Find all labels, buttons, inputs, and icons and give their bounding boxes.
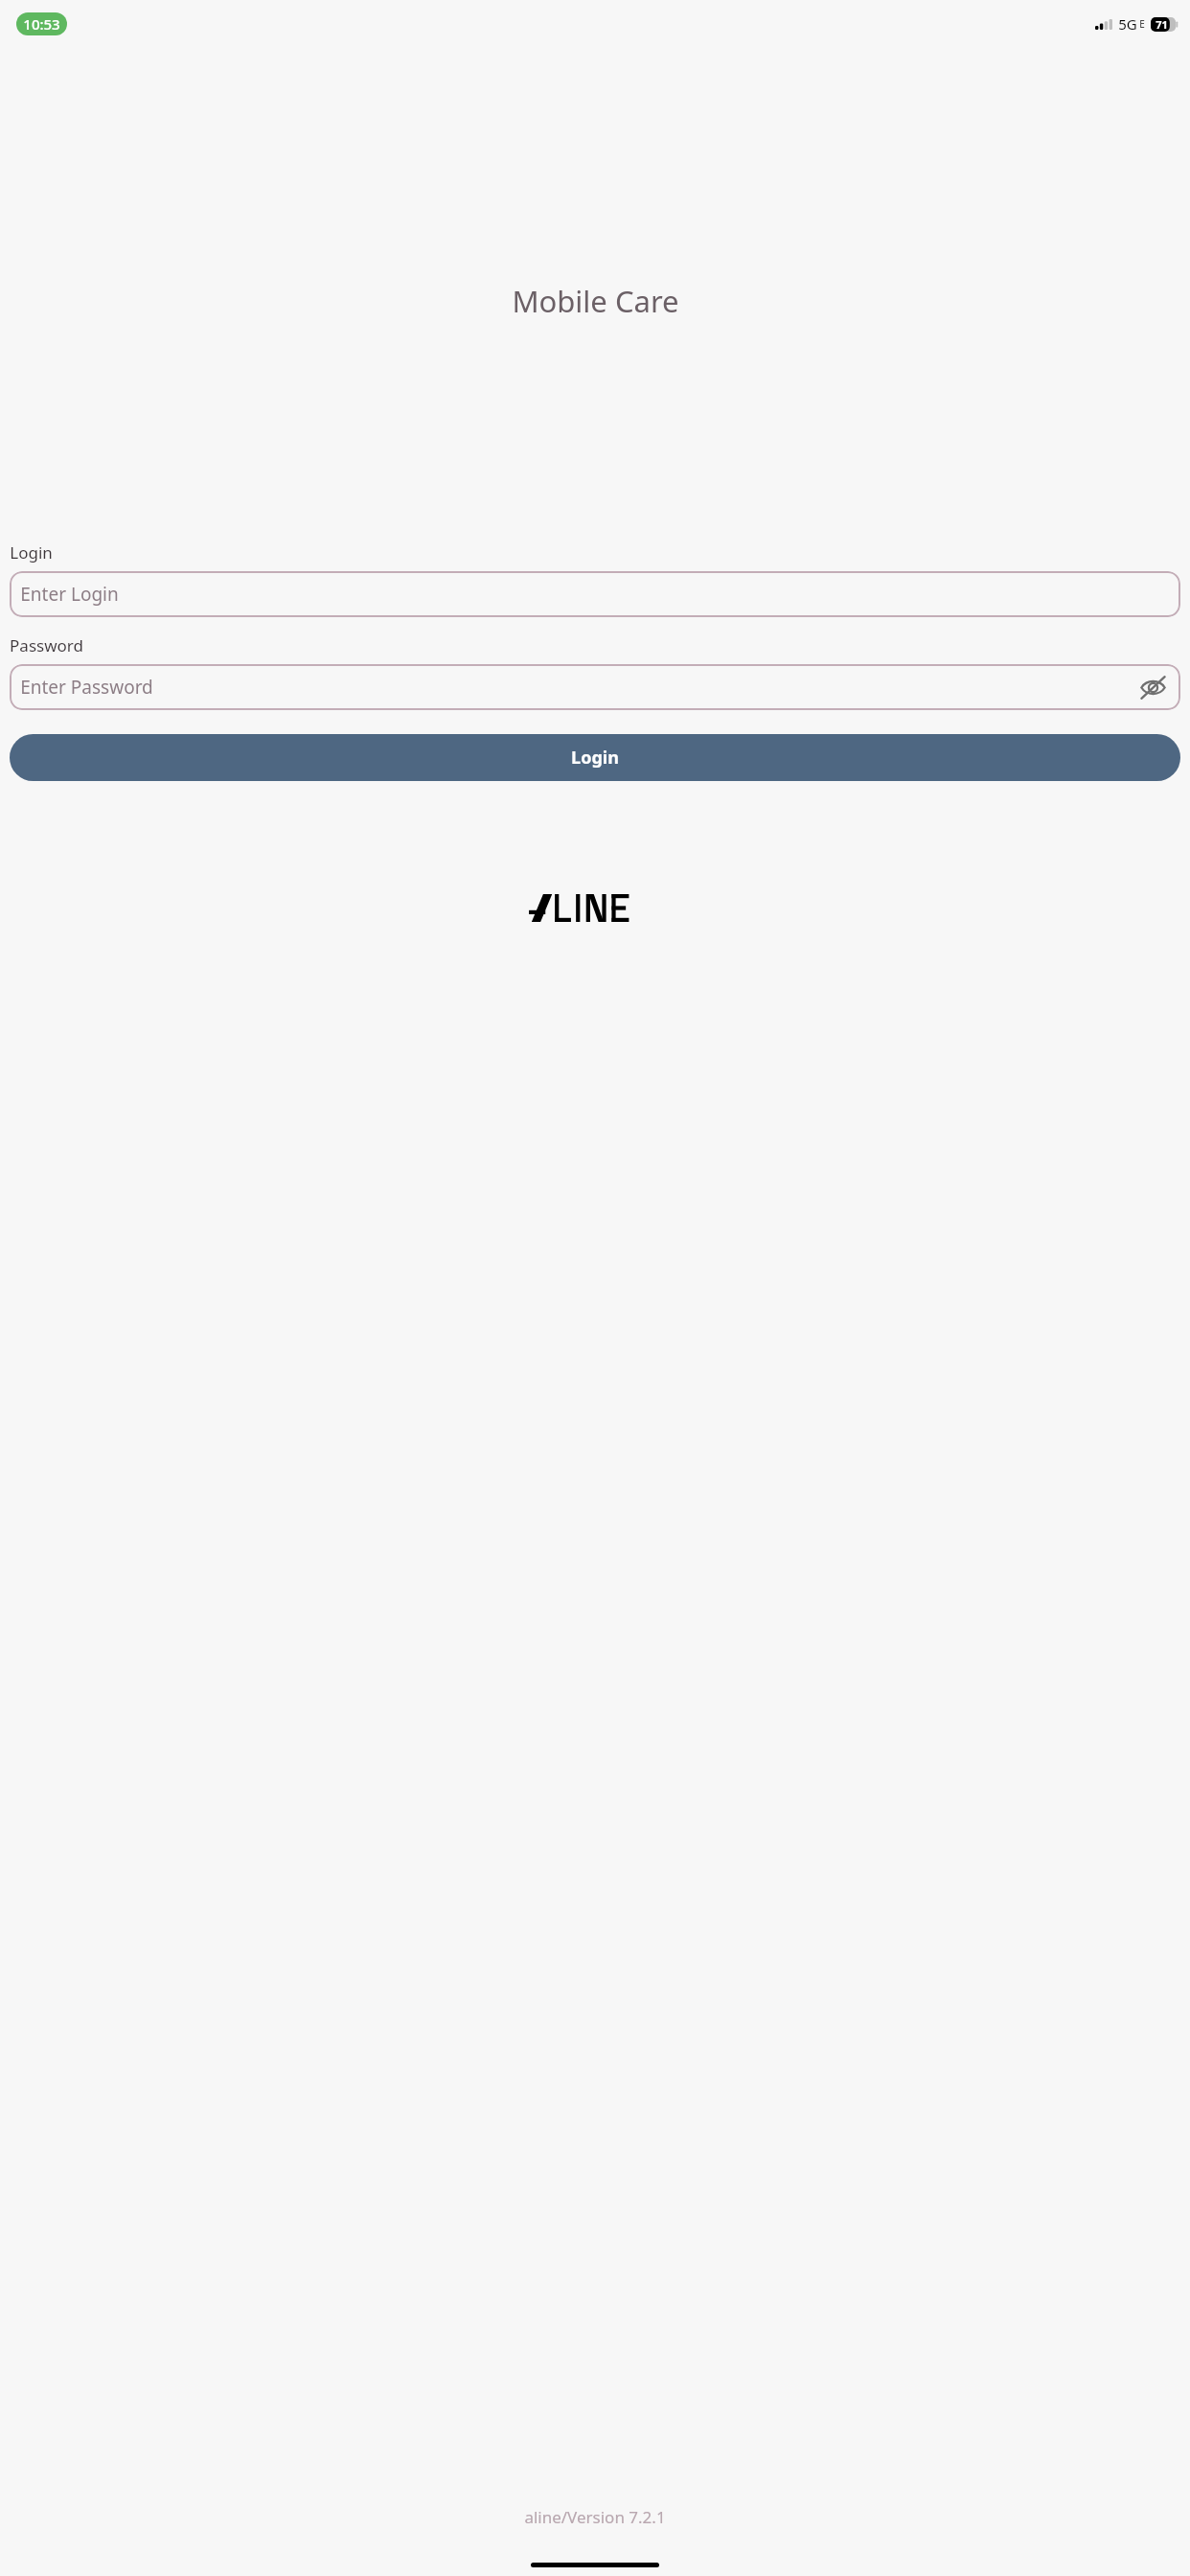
staticText: 10:53 xyxy=(23,14,60,34)
staticText: Password xyxy=(10,634,83,656)
staticText: E xyxy=(1139,17,1145,31)
staticText: 71 xyxy=(1156,17,1168,32)
staticText: 5G xyxy=(1118,14,1137,34)
staticText: Mobile Care xyxy=(512,281,679,321)
staticText: Login xyxy=(10,541,53,563)
staticText: Enter Password xyxy=(20,675,153,700)
staticText: aline/Version 7.2.1 xyxy=(524,2506,666,2528)
button[interactable]: Enter Password xyxy=(10,664,1180,710)
staticText: Enter Login xyxy=(20,582,119,607)
button[interactable]: Login xyxy=(10,734,1180,781)
staticText: Login xyxy=(571,746,619,770)
button[interactable]: Show password xyxy=(1133,668,1172,706)
button[interactable]: Enter Login xyxy=(10,571,1180,617)
